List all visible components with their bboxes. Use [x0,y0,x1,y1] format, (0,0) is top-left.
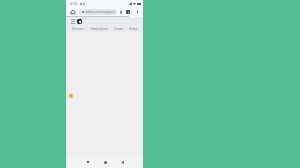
button[interactable]: Robux [123,25,143,32]
staticText: roblox.com/support [85,10,115,14]
button[interactable]: Create [108,25,128,32]
staticText: Create [114,27,123,31]
button[interactable]: Home [100,157,110,167]
button[interactable]: More options [135,9,140,14]
button[interactable]: roblox.com/support [79,9,117,15]
staticText: Marketplace [91,27,108,31]
button[interactable]: Recent apps [83,157,93,167]
button[interactable]: Menu [70,19,75,24]
staticText: Robux [129,27,138,31]
button[interactable]: Back [117,157,127,167]
button[interactable]: Home [70,9,76,15]
button[interactable]: Downloads [118,9,124,15]
staticText: 4:12 [70,1,78,6]
button[interactable]: Switch tabs [125,9,131,15]
button[interactable]: Roblox home [77,19,82,24]
button[interactable]: Marketplace [89,25,109,32]
staticText: Discover [72,27,84,31]
button[interactable]: Discover [68,25,88,32]
